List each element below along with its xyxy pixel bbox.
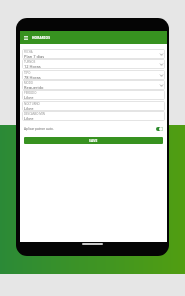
button[interactable]: MODO	[22, 80, 165, 90]
button[interactable]: Aplicar patron auto.	[24, 122, 163, 135]
button[interactable]: SAVE	[24, 137, 163, 144]
staticText: MODO	[24, 81, 33, 85]
staticText: DESCANSO MIN	[24, 112, 45, 116]
staticText: NOCTURNO	[24, 102, 40, 106]
staticText: TURNOS	[24, 60, 36, 64]
staticText: 12 Horas	[24, 64, 41, 69]
button[interactable]: Menu	[23, 35, 29, 41]
staticText: HORARIOS	[32, 36, 51, 40]
button[interactable]: FECHA	[22, 49, 165, 59]
button[interactable]: TURNOS	[22, 59, 165, 69]
staticText: Libre	[24, 95, 34, 100]
staticText: Requerido	[24, 85, 44, 90]
staticText: Plan 7 dias	[24, 54, 45, 59]
button[interactable]: DESCANSO MIN	[22, 111, 165, 121]
button[interactable]: NOCTURNO	[22, 101, 165, 111]
staticText: PERIODO	[24, 91, 37, 95]
button[interactable]: Menu	[20, 31, 167, 44]
staticText: TIPO	[24, 71, 31, 75]
staticText: Aplicar patron auto.	[24, 127, 54, 131]
staticText: Libre	[24, 116, 34, 121]
staticText: 78 Horas	[24, 75, 41, 80]
staticText: Libre	[24, 106, 34, 111]
staticText: SAVE	[89, 139, 98, 143]
staticText: FECHA	[24, 50, 33, 54]
button[interactable]: PERIODO	[22, 90, 165, 100]
button[interactable]: TIPO	[22, 70, 165, 80]
